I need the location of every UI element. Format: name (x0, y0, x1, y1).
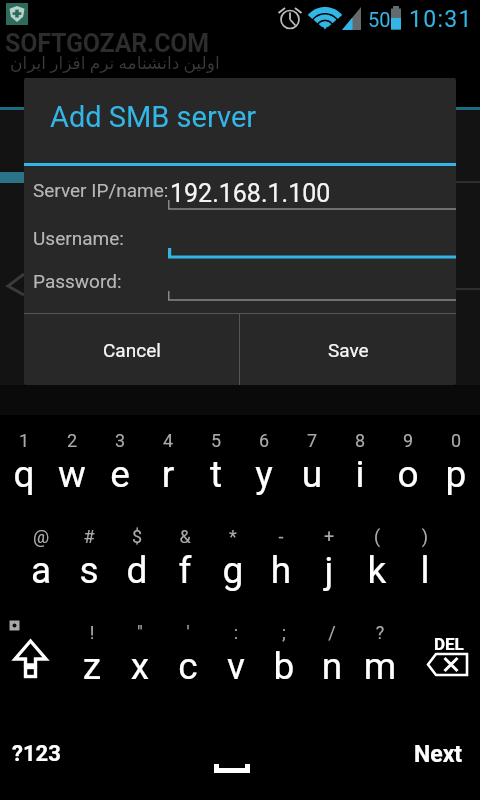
button[interactable]: # (65, 514, 113, 610)
staticText: k (353, 549, 401, 592)
staticText: 8 (336, 430, 384, 451)
staticText: : (212, 622, 260, 643)
staticText: $ (113, 526, 161, 547)
button[interactable]: Space (140, 712, 340, 800)
staticText: SOFTGOZAR.COM (5, 29, 210, 58)
staticText: d (113, 549, 161, 592)
staticText: 9 (384, 430, 432, 451)
staticText: DEL (434, 634, 464, 654)
staticText: 7 (288, 430, 336, 451)
staticText: c (164, 645, 212, 688)
staticText: 2 (48, 430, 96, 451)
staticText: i (336, 453, 384, 496)
staticText: Save (328, 339, 369, 361)
staticText: o (384, 453, 432, 496)
staticText: 6 (240, 430, 288, 451)
staticText: g (209, 549, 257, 592)
staticText: @ (17, 526, 65, 547)
button[interactable]: 5 (192, 418, 240, 514)
staticText: 50 (368, 8, 391, 31)
button[interactable]: 6 (240, 418, 288, 514)
staticText: 0 (432, 430, 480, 451)
button[interactable]: + (305, 514, 353, 610)
staticText: n (308, 645, 356, 688)
staticText: f (161, 549, 209, 592)
button[interactable]: ' (164, 610, 212, 706)
staticText: p (432, 453, 480, 496)
button[interactable]: 1 (0, 418, 48, 514)
staticText: s (65, 549, 113, 592)
button[interactable]: ?123 (0, 712, 72, 800)
staticText: / (308, 622, 356, 643)
staticText: Add SMB server (50, 100, 257, 134)
button[interactable]: : (212, 610, 260, 706)
staticText: j (305, 549, 353, 592)
staticText: w (48, 453, 96, 496)
button[interactable]: @ (17, 514, 65, 610)
staticText: - (257, 526, 305, 547)
staticText: " (116, 622, 164, 643)
button[interactable]: 7 (288, 418, 336, 514)
staticText: t (192, 453, 240, 496)
button[interactable]: - (257, 514, 305, 610)
staticText: x (116, 645, 164, 688)
staticText: ) (401, 526, 449, 547)
staticText: e (96, 453, 144, 496)
button[interactable]: Cancel (24, 314, 239, 385)
staticText: h (257, 549, 305, 592)
staticText: q (0, 453, 48, 496)
staticText: * (209, 526, 257, 547)
button[interactable]: / (308, 610, 356, 706)
staticText: 10:31 (409, 6, 473, 33)
staticText: b (260, 645, 308, 688)
staticText: & (161, 526, 209, 547)
button[interactable]: Next (396, 712, 480, 800)
staticText: u (288, 453, 336, 496)
staticText: ! (68, 622, 116, 643)
staticText: v (212, 645, 260, 688)
button[interactable]: ; (260, 610, 308, 706)
button[interactable]: Save (240, 314, 456, 385)
staticText: ? (356, 622, 404, 643)
button[interactable]: 4 (144, 418, 192, 514)
staticText: ' (164, 622, 212, 643)
button[interactable]: Delete (410, 610, 480, 706)
staticText: y (240, 453, 288, 496)
button[interactable]: * (209, 514, 257, 610)
button[interactable]: ? (356, 610, 404, 706)
button[interactable]: ( (353, 514, 401, 610)
staticText: z (68, 645, 116, 688)
staticText: Server IP/name: (33, 179, 169, 201)
staticText: 5 (192, 430, 240, 451)
staticText: # (65, 526, 113, 547)
staticText: 192.168.1.100 (170, 179, 331, 208)
staticText: اولین دانشنامه نرم افزار ایران (10, 53, 220, 73)
staticText: Next (414, 741, 463, 768)
button[interactable]: ) (401, 514, 449, 610)
staticText: + (305, 526, 353, 547)
button[interactable]: 0 (432, 418, 480, 514)
staticText: 4 (144, 430, 192, 451)
staticText: l (401, 549, 449, 592)
staticText: 3 (96, 430, 144, 451)
staticText: ; (260, 622, 308, 643)
staticText: ?123 (12, 741, 61, 767)
staticText: a (17, 549, 65, 592)
button[interactable]: 3 (96, 418, 144, 514)
staticText: ( (353, 526, 401, 547)
staticText: Cancel (103, 339, 161, 361)
button[interactable]: " (116, 610, 164, 706)
button[interactable]: 8 (336, 418, 384, 514)
staticText: r (144, 453, 192, 496)
button[interactable]: 9 (384, 418, 432, 514)
button[interactable]: & (161, 514, 209, 610)
staticText: m (356, 645, 404, 688)
button[interactable]: Shift (0, 610, 68, 706)
button[interactable]: ! (68, 610, 116, 706)
staticText: 1 (0, 430, 48, 451)
button[interactable]: 2 (48, 418, 96, 514)
staticText: Username: (33, 227, 124, 249)
button[interactable]: $ (113, 514, 161, 610)
staticText: Password: (33, 270, 122, 292)
